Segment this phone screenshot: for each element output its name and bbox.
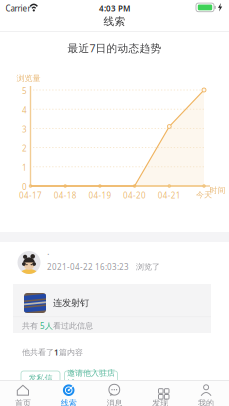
staticText: 篇内容: [59, 347, 83, 357]
staticText: 2021-04-22 16:03:23: [47, 261, 129, 272]
staticText: 线索: [61, 398, 77, 406]
button[interactable]: 发私信: [21, 371, 60, 385]
button[interactable]: 消息: [92, 380, 137, 406]
staticText: 邀请他入驻店铺: [67, 368, 115, 388]
staticText: 5人: [40, 320, 53, 331]
staticText: 我的: [198, 398, 214, 406]
staticText: 4:03 PM: [99, 3, 130, 14]
staticText: 1: [54, 347, 59, 358]
staticText: 时间: [209, 185, 225, 195]
staticText: 他共看了: [22, 347, 54, 357]
staticText: 1: [22, 162, 27, 173]
staticText: 0: [22, 182, 27, 192]
staticText: 共有: [22, 321, 40, 331]
staticText: 最近7日的动态趋势: [67, 41, 161, 55]
staticText: 04-19: [88, 190, 111, 201]
staticText: ·: [47, 248, 50, 260]
staticText: 04-21: [158, 190, 181, 201]
staticText: 04-20: [123, 190, 146, 201]
button[interactable]: 连发射钉: [24, 293, 202, 313]
staticText: 发私信: [28, 373, 52, 383]
staticText: 04-18: [54, 190, 77, 201]
button[interactable]: 发现: [137, 380, 183, 406]
staticText: 连发射钉: [53, 297, 89, 309]
staticText: 发现: [152, 398, 168, 406]
staticText: 今天: [196, 190, 212, 200]
staticText: 浏览量: [16, 73, 40, 83]
staticText: Carrier: [5, 3, 30, 14]
staticText: 3: [22, 124, 27, 135]
button[interactable]: 我的: [183, 380, 229, 406]
staticText: 首页: [15, 398, 31, 406]
staticText: 2: [22, 143, 27, 154]
button[interactable]: 首页: [0, 380, 46, 406]
button[interactable]: 线索: [46, 380, 92, 406]
staticText: 看过此信息: [53, 321, 93, 331]
staticText: 5: [22, 86, 27, 96]
staticText: 线索: [103, 15, 125, 28]
staticText: 04-17: [19, 190, 42, 201]
staticText: 4: [22, 105, 27, 115]
button[interactable]: 邀请他入驻店铺: [64, 371, 117, 385]
staticText: 浏览了: [136, 262, 160, 272]
staticText: 消息: [106, 398, 122, 406]
